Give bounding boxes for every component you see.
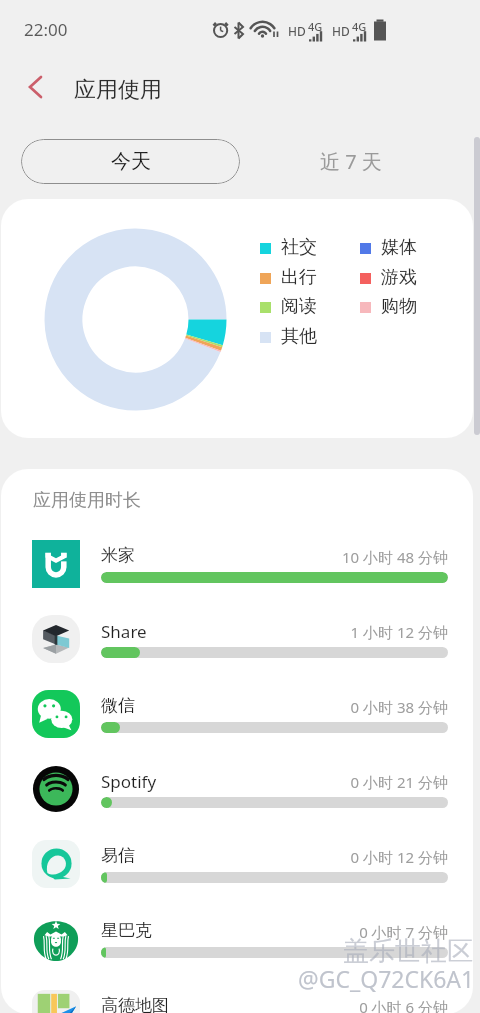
- staticText: 近 7 天: [320, 148, 382, 175]
- staticText: 应用使用时长: [33, 489, 141, 512]
- staticText: 22:00: [24, 18, 68, 41]
- button[interactable]: 近 7 天: [288, 139, 413, 184]
- button[interactable]: 微信: [1, 675, 473, 750]
- staticText: 0 小时 12 分钟: [251, 847, 448, 867]
- staticText: 游戏: [381, 266, 417, 289]
- staticText: 应用使用: [74, 76, 162, 104]
- button[interactable]: 星巴克: [1, 900, 473, 975]
- staticText: 社交: [281, 236, 317, 259]
- staticText: 阅读: [281, 295, 317, 318]
- staticText: 4G: [308, 19, 323, 34]
- staticText: 今天: [111, 149, 151, 174]
- staticText: Share: [101, 620, 147, 643]
- staticText: 易信: [101, 845, 135, 866]
- staticText: 0 小时 38 分钟: [251, 697, 448, 717]
- staticText: 4G: [352, 19, 367, 34]
- staticText: Spotify: [101, 770, 157, 793]
- staticText: HD: [288, 23, 306, 39]
- staticText: 高德地图: [101, 995, 169, 1013]
- staticText: @GC_Q72CK6A1: [298, 963, 475, 994]
- staticText: 0 小时 6 分钟: [251, 997, 448, 1013]
- staticText: HD: [332, 23, 350, 39]
- staticText: 出行: [281, 266, 317, 289]
- staticText: 0 小时 7 分钟: [251, 922, 448, 942]
- button[interactable]: 米家: [1, 525, 473, 600]
- staticText: 米家: [101, 545, 135, 566]
- button[interactable]: Share: [1, 600, 473, 675]
- staticText: 其他: [281, 325, 317, 348]
- staticText: 1 小时 12 分钟: [251, 622, 448, 642]
- button[interactable]: 易信: [1, 825, 473, 900]
- button[interactable]: Spotify: [1, 750, 473, 825]
- staticText: 微信: [101, 695, 135, 716]
- button[interactable]: Back: [14, 65, 58, 109]
- staticText: 0 小时 21 分钟: [251, 772, 448, 792]
- staticText: 星巴克: [101, 920, 152, 941]
- staticText: 媒体: [381, 236, 417, 259]
- staticText: 10 小时 48 分钟: [251, 547, 448, 567]
- staticText: 盖乐世社区: [343, 935, 473, 968]
- button[interactable]: 今天: [21, 139, 240, 184]
- staticText: 购物: [381, 295, 417, 318]
- button[interactable]: 高德地图: [1, 975, 473, 1013]
